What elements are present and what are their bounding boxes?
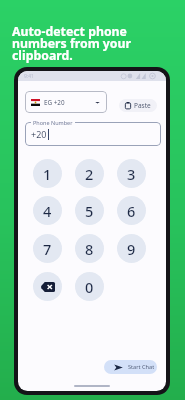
- button[interactable]: 1: [33, 159, 62, 188]
- staticText: 9: [127, 239, 136, 259]
- button[interactable]: EG +20: [25, 91, 107, 113]
- staticText: 9:41: [24, 73, 34, 80]
- button[interactable]: 0: [75, 272, 104, 301]
- staticText: 8: [85, 239, 94, 259]
- staticText: 0: [85, 277, 94, 297]
- staticText: Phone Number: [33, 119, 73, 126]
- button[interactable]: 6: [117, 196, 146, 225]
- button[interactable]: 7: [33, 234, 62, 263]
- button[interactable]: 5: [75, 196, 104, 225]
- staticText: 6: [127, 201, 136, 221]
- staticText: +20: [31, 128, 47, 140]
- staticText: 1: [43, 164, 52, 184]
- button[interactable]: 9: [117, 234, 146, 263]
- button[interactable]: 3: [117, 159, 146, 188]
- button[interactable]: +20: [25, 122, 161, 146]
- staticText: 5: [85, 201, 94, 221]
- staticText: Start Chat: [128, 363, 154, 371]
- button[interactable]: Backspace: [33, 272, 62, 301]
- staticText: Paste: [134, 101, 151, 110]
- staticText: 7: [43, 239, 52, 259]
- button[interactable]: 8: [75, 234, 104, 263]
- button[interactable]: Paste: [119, 99, 157, 112]
- button[interactable]: 4: [33, 196, 62, 225]
- staticText: 3: [127, 164, 136, 184]
- staticText: EG +20: [44, 98, 65, 107]
- button[interactable]: 2: [75, 159, 104, 188]
- button[interactable]: Start Chat: [104, 360, 157, 374]
- staticText: 2: [85, 164, 94, 184]
- staticText: 4: [43, 201, 52, 221]
- staticText: Auto-detect phone numbers from your clip…: [12, 23, 132, 64]
